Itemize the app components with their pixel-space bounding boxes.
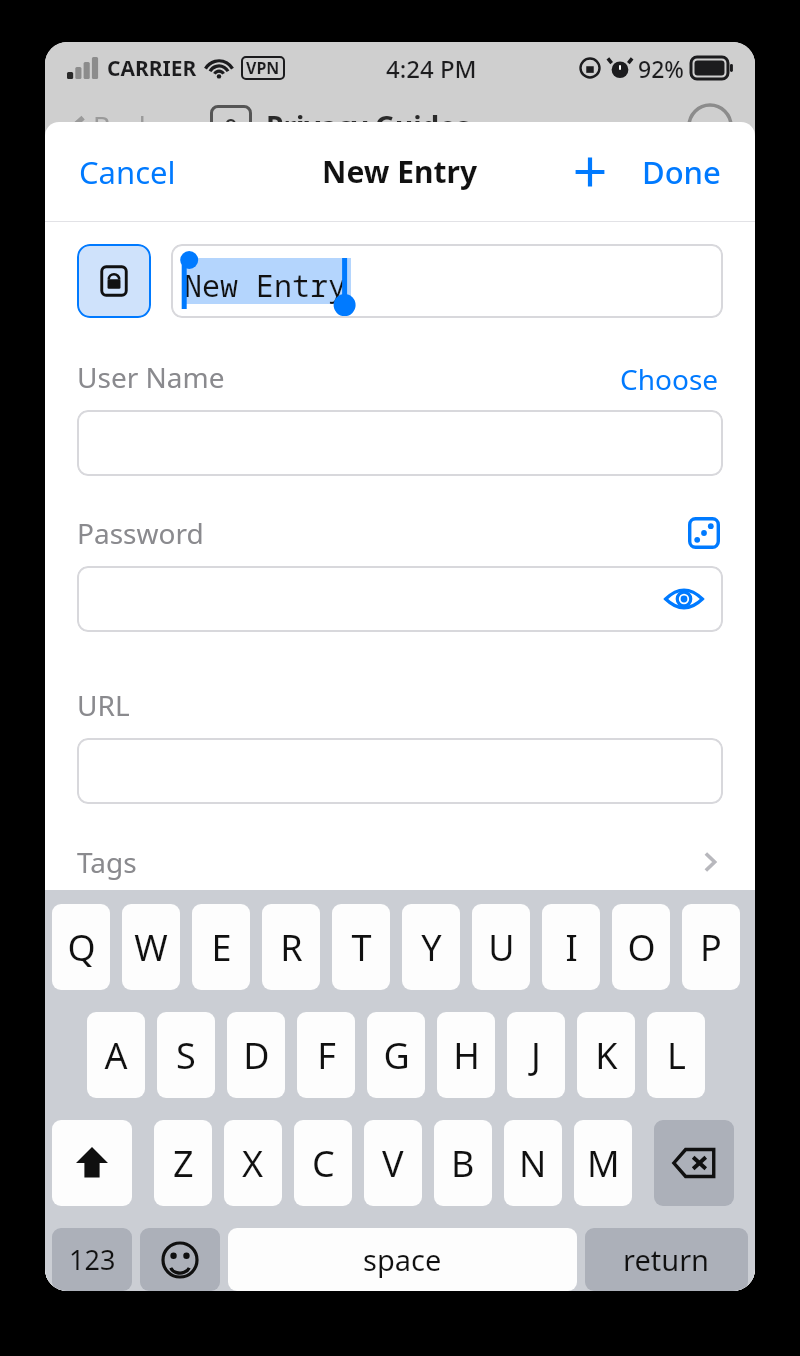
- staticText: L: [667, 1031, 686, 1080]
- button[interactable]: E: [192, 904, 250, 990]
- button[interactable]: D: [227, 1012, 285, 1098]
- button[interactable]: F: [297, 1012, 355, 1098]
- staticText: 92%: [638, 53, 684, 84]
- button[interactable]: Generate password: [685, 514, 723, 552]
- staticText: J: [531, 1031, 541, 1080]
- staticText: M: [587, 1139, 620, 1188]
- staticText: D: [243, 1031, 270, 1080]
- button[interactable]: T: [332, 904, 390, 990]
- staticText: I: [565, 923, 578, 972]
- staticText: 0: [224, 110, 238, 143]
- button[interactable]: H: [437, 1012, 495, 1098]
- staticText: A: [104, 1031, 128, 1080]
- button[interactable]: L: [647, 1012, 705, 1098]
- staticText: W: [134, 923, 168, 972]
- staticText: K: [595, 1031, 618, 1080]
- button[interactable]: 123: [52, 1228, 132, 1291]
- button[interactable]: Cancel: [75, 147, 180, 197]
- staticText: Password: [77, 514, 204, 552]
- staticText: Y: [421, 923, 442, 972]
- button[interactable]: S: [157, 1012, 215, 1098]
- button[interactable]: Choose icon: [77, 244, 151, 318]
- staticText: CARRIER: [107, 54, 197, 83]
- staticText: V: [382, 1139, 404, 1188]
- button[interactable]: Q: [52, 904, 110, 990]
- button[interactable]: P: [682, 904, 740, 990]
- staticText: 123: [69, 1241, 116, 1278]
- button[interactable]: W: [122, 904, 180, 990]
- button[interactable]: A: [87, 1012, 145, 1098]
- staticText: X: [242, 1139, 264, 1188]
- button[interactable]: Y: [402, 904, 460, 990]
- staticText: URL: [77, 686, 130, 724]
- staticText: B: [451, 1139, 475, 1188]
- button[interactable]: Add field: [566, 148, 614, 196]
- staticText: Z: [173, 1139, 194, 1188]
- button[interactable]: K: [577, 1012, 635, 1098]
- button[interactable]: U: [472, 904, 530, 990]
- staticText: New Entry: [184, 265, 346, 306]
- staticText: return: [623, 1240, 710, 1279]
- button[interactable]: B: [434, 1120, 492, 1206]
- staticText: VPN: [246, 57, 280, 79]
- button[interactable]: New Entry: [171, 244, 723, 318]
- button[interactable]: V: [364, 1120, 422, 1206]
- button[interactable]: return: [585, 1228, 748, 1291]
- staticText: C: [312, 1139, 335, 1188]
- button[interactable]: [77, 738, 723, 804]
- button[interactable]: [77, 410, 723, 476]
- button[interactable]: Shift: [52, 1120, 132, 1206]
- button[interactable]: space: [228, 1228, 577, 1291]
- staticText: S: [176, 1031, 196, 1080]
- staticText: space: [363, 1240, 442, 1279]
- button[interactable]: G: [367, 1012, 425, 1098]
- button[interactable]: J: [507, 1012, 565, 1098]
- staticText: F: [317, 1031, 336, 1080]
- staticText: Done: [642, 151, 721, 193]
- button[interactable]: Z: [154, 1120, 212, 1206]
- staticText: U: [488, 923, 515, 972]
- staticText: G: [383, 1031, 410, 1080]
- button[interactable]: X: [224, 1120, 282, 1206]
- staticText: Tags: [77, 843, 137, 881]
- button[interactable]: Emoji: [140, 1228, 220, 1291]
- staticText: O: [627, 923, 656, 972]
- staticText: N: [519, 1139, 547, 1188]
- button[interactable]: R: [262, 904, 320, 990]
- staticText: Privacy Guides: [266, 107, 471, 145]
- button[interactable]: M: [574, 1120, 632, 1206]
- button[interactable]: I: [542, 904, 600, 990]
- button[interactable]: Tags: [45, 834, 755, 890]
- staticText: Choose: [620, 360, 719, 394]
- button[interactable]: Show password: [661, 576, 707, 622]
- staticText: Cancel: [79, 151, 176, 193]
- button[interactable]: C: [294, 1120, 352, 1206]
- button[interactable]: O: [612, 904, 670, 990]
- staticText: P: [700, 923, 722, 972]
- button[interactable]: Done: [638, 147, 725, 197]
- staticText: Q: [67, 923, 96, 972]
- button[interactable]: Backspace: [654, 1120, 734, 1206]
- staticText: T: [351, 923, 372, 972]
- staticText: User Name: [77, 358, 225, 396]
- staticText: 4:24 PM: [386, 52, 477, 85]
- button[interactable]: N: [504, 1120, 562, 1206]
- staticText: E: [211, 923, 232, 972]
- button[interactable]: Choose: [616, 356, 723, 398]
- staticText: H: [453, 1031, 480, 1080]
- staticText: R: [280, 923, 303, 972]
- button[interactable]: Show password: [77, 566, 723, 632]
- staticText: Back: [93, 108, 154, 145]
- staticText: New Entry: [322, 151, 478, 192]
